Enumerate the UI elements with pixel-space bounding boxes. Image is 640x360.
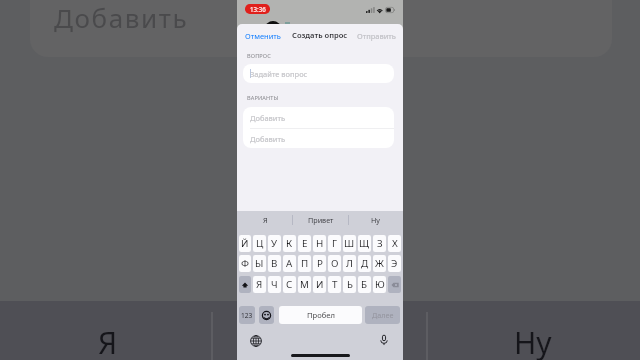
button[interactable]: 123 [239,306,255,324]
button[interactable]: П [298,255,311,272]
staticText: Пробел [307,310,335,320]
staticText: Е [302,237,308,250]
staticText: Ну [514,322,552,360]
staticText: Э [391,257,398,270]
button[interactable]: К [283,235,296,252]
staticText: Ф [241,257,250,270]
button[interactable]: Х [388,235,401,252]
staticText: Ь [347,278,353,291]
button[interactable]: Й [239,235,251,252]
button[interactable]: Задайте вопрос [243,64,394,83]
staticText: С [286,278,293,291]
staticText: Привет [308,215,334,225]
button[interactable]: Далее [365,306,400,324]
button[interactable]: Ну [348,211,403,229]
staticText: К [286,237,293,250]
button[interactable]: И [313,276,326,293]
staticText: Я [98,322,118,360]
button[interactable]: Shift [239,276,251,293]
staticText: А [286,257,293,270]
staticText: Ж [375,257,384,270]
staticText: Добавить [250,134,286,144]
button[interactable]: Ж [373,255,386,272]
button[interactable]: Отменить [244,30,282,42]
staticText: 123 [241,311,253,320]
button[interactable]: О [328,255,341,272]
staticText: И [316,278,324,291]
button[interactable]: Backspace [388,276,401,293]
button[interactable]: Добавить [243,107,394,128]
staticText: 13:36 [250,5,266,13]
staticText: Добавить [250,113,286,123]
button[interactable]: Emoji [259,306,274,324]
button[interactable]: Щ [358,235,371,252]
button[interactable]: Э [388,255,401,272]
staticText: Ц [256,237,264,250]
staticText: Я [256,278,263,291]
staticText: Отменить [245,31,281,41]
button[interactable]: А [283,255,296,272]
staticText: Л [346,257,353,270]
staticText: Щ [359,237,370,250]
button[interactable]: Ш [343,235,356,252]
button[interactable]: Ь [343,276,356,293]
button[interactable]: Н [313,235,326,252]
button[interactable]: Б [358,276,371,293]
button[interactable]: Пробел [279,306,362,324]
staticText: Й [241,237,249,250]
button[interactable]: Е [298,235,311,252]
button[interactable]: В [268,255,281,272]
staticText: Р [317,257,323,270]
button[interactable]: Switch keyboard [250,335,262,347]
staticText: Б [361,278,368,291]
button[interactable]: С [283,276,296,293]
button[interactable]: Ч [268,276,281,293]
button[interactable]: Я [253,276,266,293]
staticText: Далее [372,310,394,320]
button[interactable]: Я [237,211,293,229]
staticText: М [300,278,309,291]
button[interactable]: М [298,276,311,293]
staticText: В [271,257,278,270]
staticText: Ну [371,215,380,225]
staticText: Отправить [357,31,396,41]
staticText: Т [332,278,338,291]
staticText: Задайте вопрос [250,69,308,79]
button[interactable]: Привет [293,211,348,229]
staticText: П [301,257,309,270]
button[interactable]: Ф [239,255,251,272]
staticText: Д [361,257,369,270]
button[interactable]: Добавить [243,129,394,148]
button[interactable]: Р [313,255,326,272]
staticText: У [271,237,278,250]
button[interactable]: Л [343,255,356,272]
staticText: Н [316,237,324,250]
button[interactable]: Д [358,255,371,272]
button[interactable]: У [268,235,281,252]
staticText: Я [263,215,268,225]
staticText: Х [392,237,398,250]
staticText: О [331,257,339,270]
staticText: Ю [375,278,385,291]
button[interactable]: Г [328,235,341,252]
button[interactable]: З [373,235,386,252]
button[interactable]: Т [328,276,341,293]
staticText: ВАРИАНТЫ [247,94,279,102]
staticText: Ч [271,278,278,291]
button[interactable]: Отправить [356,30,397,42]
staticText: Г [332,237,337,250]
staticText: Добавить [54,0,189,35]
staticText: Создать опрос [292,30,348,40]
button[interactable]: Ц [253,235,266,252]
button[interactable]: Dictation [378,334,390,346]
button[interactable]: Ы [253,255,266,272]
staticText: З [377,237,383,250]
staticText: ВОПРОС [247,52,271,60]
staticText: Ш [344,237,355,250]
button[interactable]: Ю [373,276,386,293]
staticText: Ы [255,257,264,270]
